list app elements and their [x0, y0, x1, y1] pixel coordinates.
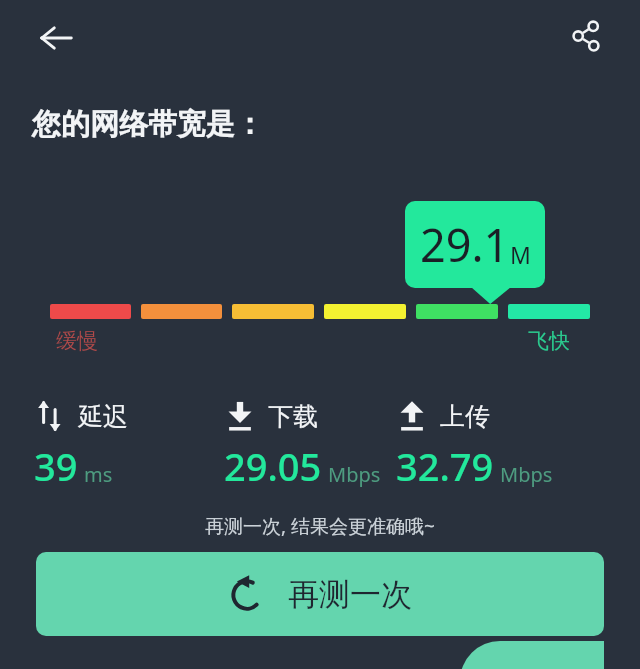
staticText: 再测一次, 结果会更准确哦~	[0, 513, 640, 539]
button[interactable]: 再测一次	[36, 552, 604, 636]
staticText: 32.79	[396, 440, 494, 492]
staticText: Mbps	[328, 461, 381, 488]
staticText: 下载	[268, 401, 318, 432]
staticText: M	[510, 239, 531, 270]
staticText: 您的网络带宽是：	[32, 106, 264, 143]
staticText: 29.1	[420, 214, 510, 275]
staticText: Mbps	[500, 461, 553, 488]
staticText: 缓慢	[56, 328, 98, 354]
staticText: 飞快	[528, 328, 570, 354]
staticText: 延迟	[78, 401, 128, 432]
staticText: 29.05	[224, 440, 322, 492]
staticText: 39	[34, 440, 78, 492]
staticText: 再测一次	[288, 575, 412, 614]
staticText: ms	[84, 461, 113, 488]
staticText: 上传	[440, 401, 490, 432]
button[interactable]: Back	[28, 10, 84, 66]
button[interactable]: Share	[556, 6, 616, 66]
